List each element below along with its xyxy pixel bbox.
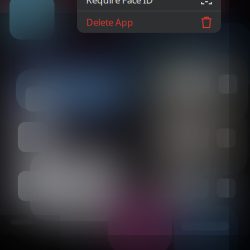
staticText: Require Face ID [86, 0, 153, 6]
staticText: Delete App [86, 16, 133, 28]
button[interactable]: Require Face ID [77, 0, 221, 11]
button[interactable]: Delete App [77, 11, 221, 33]
